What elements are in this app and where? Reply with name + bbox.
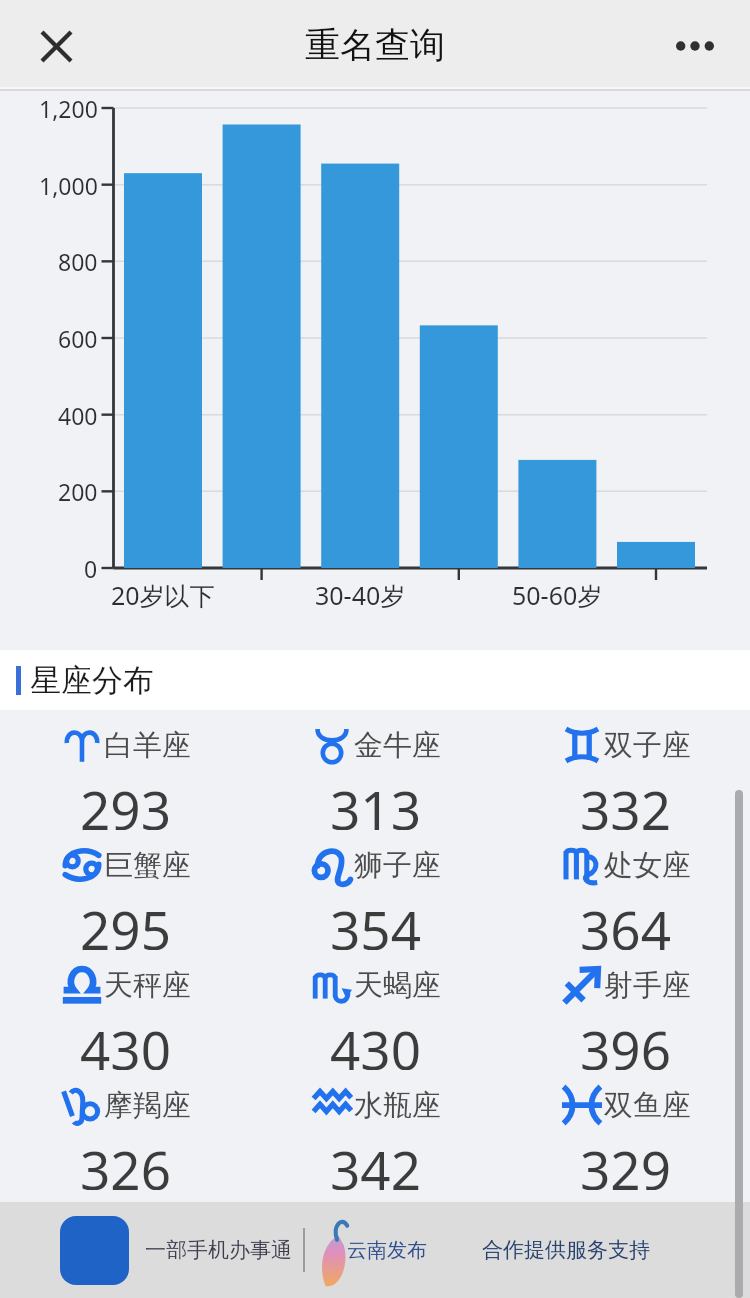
button[interactable]: 摩羯座 [0, 1070, 250, 1190]
staticText: 摩羯座 [104, 1087, 191, 1124]
staticText: 295 [80, 893, 171, 950]
staticText: 狮子座 [354, 847, 441, 884]
staticText: 600 [58, 323, 98, 354]
button[interactable]: 天蝎座 [250, 950, 500, 1070]
staticText: 364 [580, 893, 671, 950]
staticText: 合作提供服务支持 [482, 1237, 650, 1263]
button[interactable]: 射手座 [500, 950, 750, 1070]
staticText: 处女座 [604, 847, 691, 884]
button[interactable]: 白羊座 [0, 710, 250, 830]
staticText: 射手座 [604, 967, 691, 1004]
button[interactable]: 水瓶座 [250, 1070, 500, 1190]
staticText: 巨蟹座 [104, 847, 191, 884]
staticText: 332 [580, 773, 671, 830]
staticText: 白羊座 [104, 727, 191, 764]
button[interactable]: 狮子座 [250, 830, 500, 950]
button[interactable]: 金牛座 [250, 710, 500, 830]
staticText: 云南发布 [347, 1238, 427, 1263]
staticText: 金牛座 [354, 727, 441, 764]
staticText: 30-40岁 [315, 578, 406, 612]
staticText: 313 [330, 773, 421, 830]
staticText: 329 [580, 1133, 671, 1190]
staticText: 50-60岁 [512, 578, 603, 612]
staticText: 双鱼座 [604, 1087, 691, 1124]
button[interactable]: 处女座 [500, 830, 750, 950]
staticText: 双子座 [604, 727, 691, 764]
staticText: 326 [80, 1133, 171, 1190]
staticText: 200 [58, 476, 98, 507]
button[interactable]: Close [24, 14, 88, 78]
button[interactable]: 巨蟹座 [0, 830, 250, 950]
staticText: 天秤座 [104, 967, 191, 1004]
staticText: 0 [84, 553, 98, 584]
staticText: 星座分布 [30, 661, 154, 700]
staticText: 800 [58, 246, 98, 277]
staticText: 430 [80, 1013, 171, 1070]
staticText: 1,200 [39, 93, 98, 124]
staticText: 1,000 [39, 170, 98, 201]
staticText: 天蝎座 [354, 967, 441, 1004]
staticText: 396 [580, 1013, 671, 1070]
staticText: 342 [330, 1133, 421, 1190]
button[interactable]: 天秤座 [0, 950, 250, 1070]
staticText: 430 [330, 1013, 421, 1070]
button[interactable]: App icon [60, 1216, 129, 1285]
staticText: 20岁以下 [111, 578, 215, 612]
staticText: 400 [58, 400, 98, 431]
staticText: 293 [80, 773, 171, 830]
button[interactable]: 双鱼座 [500, 1070, 750, 1190]
staticText: 重名查询 [305, 23, 445, 67]
button[interactable]: 双子座 [500, 710, 750, 830]
staticText: 354 [330, 893, 421, 950]
staticText: 水瓶座 [354, 1087, 441, 1124]
button[interactable]: More options [661, 12, 729, 80]
staticText: 一部手机办事通 [145, 1237, 292, 1263]
